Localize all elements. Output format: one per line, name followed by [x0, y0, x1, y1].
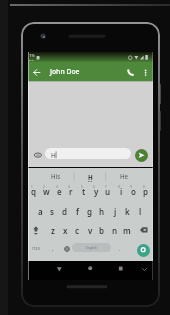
button[interactable]: s [46, 203, 58, 219]
button[interactable] [114, 263, 128, 277]
button[interactable] [141, 67, 150, 79]
staticText: v [88, 225, 93, 236]
button[interactable]: p [140, 183, 152, 199]
staticText: d [62, 206, 68, 217]
staticText: a [38, 206, 43, 217]
button[interactable]: v [84, 222, 96, 238]
staticText: 7 [105, 185, 107, 189]
staticText: , [52, 246, 54, 253]
staticText: l [139, 206, 142, 217]
staticText: u [105, 186, 111, 197]
staticText: H [88, 173, 93, 181]
staticText: c [75, 225, 80, 236]
staticText: English [86, 246, 97, 250]
button[interactable] [135, 149, 148, 162]
button[interactable]: k [121, 203, 133, 219]
button[interactable]: His [46, 170, 66, 182]
button[interactable]: d [59, 203, 71, 219]
button[interactable]: t [78, 183, 90, 199]
staticText: H [51, 151, 56, 160]
staticText: 9 [130, 185, 132, 189]
button[interactable]: c [71, 222, 83, 238]
button[interactable]: y [90, 183, 102, 199]
button[interactable]: f [71, 203, 83, 219]
button[interactable] [31, 67, 43, 79]
button[interactable]: H [80, 171, 100, 183]
button[interactable]: w [40, 183, 52, 199]
staticText: r [69, 186, 73, 197]
staticText: h [99, 206, 105, 217]
staticText: t [82, 186, 86, 197]
staticText: w [43, 186, 50, 197]
button[interactable]: z [47, 222, 59, 238]
button[interactable]: h [96, 203, 108, 219]
staticText: John Doe [50, 67, 80, 76]
button[interactable] [72, 243, 111, 252]
staticText: s [50, 206, 54, 217]
staticText: He [120, 172, 129, 180]
button[interactable]: r [65, 183, 77, 199]
staticText: k [125, 206, 130, 217]
button[interactable] [126, 66, 138, 78]
button[interactable]: x [59, 222, 71, 238]
staticText: m [123, 225, 131, 236]
staticText: e [57, 186, 62, 197]
button[interactable] [32, 149, 44, 162]
staticText: ?123 [32, 246, 40, 251]
staticText: j [114, 206, 117, 217]
button[interactable]: g [84, 203, 96, 219]
staticText: 19:55 [29, 53, 37, 61]
staticText: 2 [43, 185, 45, 189]
staticText: 0 [143, 185, 145, 189]
button[interactable]: b [96, 222, 108, 238]
button[interactable]: , [47, 243, 58, 256]
button[interactable]: e [53, 183, 65, 199]
button[interactable] [138, 263, 151, 276]
button[interactable]: q [28, 183, 40, 199]
button[interactable]: i [115, 183, 127, 199]
button[interactable]: He [114, 170, 134, 182]
staticText: i [120, 186, 123, 197]
staticText: x [63, 225, 68, 236]
button[interactable]: j [109, 203, 121, 219]
button[interactable]: ?123 [29, 242, 42, 255]
staticText: q [31, 186, 37, 197]
staticText: His [51, 172, 61, 180]
button[interactable] [61, 242, 73, 256]
button[interactable]: l [134, 203, 146, 219]
staticText: 5 [81, 185, 83, 189]
staticText: 6 [93, 185, 95, 189]
staticText: 1 [31, 185, 33, 189]
button[interactable]: n [109, 222, 121, 238]
staticText: 3 [56, 185, 58, 189]
staticText: p [143, 186, 149, 197]
staticText: o [131, 186, 136, 197]
button[interactable] [136, 222, 152, 240]
button[interactable]: . [114, 243, 125, 256]
button[interactable]: o [127, 183, 139, 199]
button[interactable]: u [102, 183, 114, 199]
staticText: n [112, 225, 118, 236]
button[interactable] [29, 222, 45, 240]
button[interactable]: John Doe [50, 65, 95, 78]
staticText: 4 [68, 185, 70, 189]
staticText: z [51, 225, 55, 236]
button[interactable] [45, 148, 131, 159]
staticText: g [87, 206, 93, 217]
staticText: 8 [118, 185, 120, 189]
button[interactable]: a [34, 203, 46, 219]
staticText: y [94, 186, 99, 197]
button[interactable] [137, 244, 150, 257]
staticText: f [76, 206, 79, 217]
button[interactable] [52, 263, 66, 277]
button[interactable] [83, 263, 97, 277]
staticText: b [99, 225, 105, 236]
staticText: . [119, 246, 121, 253]
button[interactable]: m [121, 222, 133, 238]
